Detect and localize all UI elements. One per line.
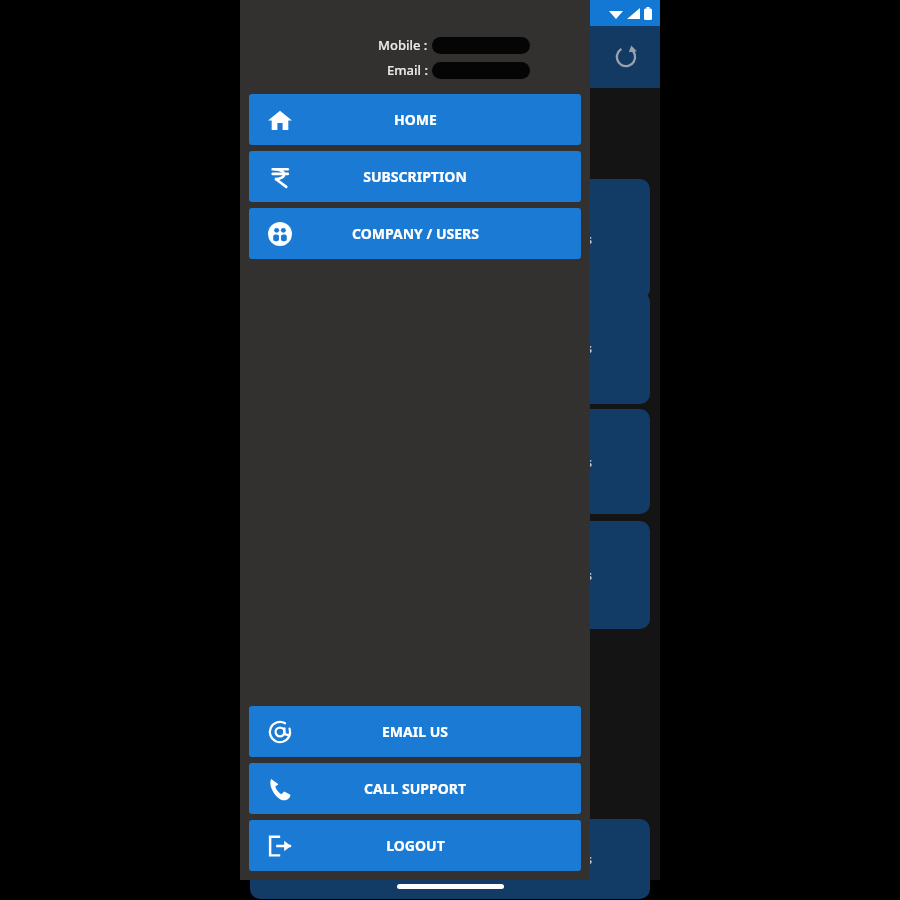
staticText: COMPANY / USERS [352, 224, 479, 243]
button[interactable]: LOGOUT [249, 820, 581, 871]
button[interactable]: COMPANY / USERS [249, 208, 581, 259]
button[interactable]: Refresh [604, 35, 648, 79]
button[interactable]: Details [250, 292, 650, 404]
staticText: Details [547, 566, 592, 584]
staticText: Details [547, 850, 592, 868]
staticText: EMAIL US [382, 722, 448, 741]
staticText: Mobile : [378, 36, 428, 54]
staticText: Details [547, 230, 592, 248]
staticText: Email : [387, 61, 428, 79]
button[interactable]: Details [250, 819, 650, 899]
staticText: CALL SUPPORT [364, 779, 466, 798]
button[interactable]: HOME [249, 94, 581, 145]
staticText: HOME [394, 110, 437, 129]
button[interactable]: Details [250, 521, 650, 629]
button[interactable]: Details [250, 409, 650, 514]
button[interactable]: CALL SUPPORT [249, 763, 581, 814]
staticText: Details [547, 339, 592, 357]
staticText: Details [547, 453, 592, 471]
staticText: SUBSCRIPTION [363, 167, 467, 186]
button[interactable]: SUBSCRIPTION [249, 151, 581, 202]
button[interactable]: EMAIL US [249, 706, 581, 757]
button[interactable]: Details [250, 179, 650, 299]
staticText: LOGOUT [386, 836, 445, 855]
